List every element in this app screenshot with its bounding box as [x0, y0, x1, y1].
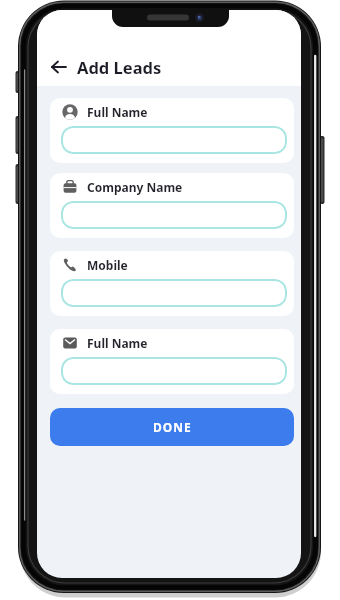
button[interactable] — [61, 201, 287, 229]
button[interactable]: DONE — [50, 408, 294, 446]
button[interactable] — [61, 126, 287, 154]
button[interactable] — [61, 279, 287, 307]
staticText: Add Leads — [77, 56, 162, 78]
staticText: Mobile — [87, 257, 128, 273]
staticText: Full Name — [87, 104, 148, 120]
button[interactable] — [61, 357, 287, 385]
staticText: Company Name — [87, 179, 183, 195]
staticText: Full Name — [87, 335, 148, 351]
staticText: DONE — [153, 419, 192, 435]
button[interactable] — [51, 59, 67, 75]
